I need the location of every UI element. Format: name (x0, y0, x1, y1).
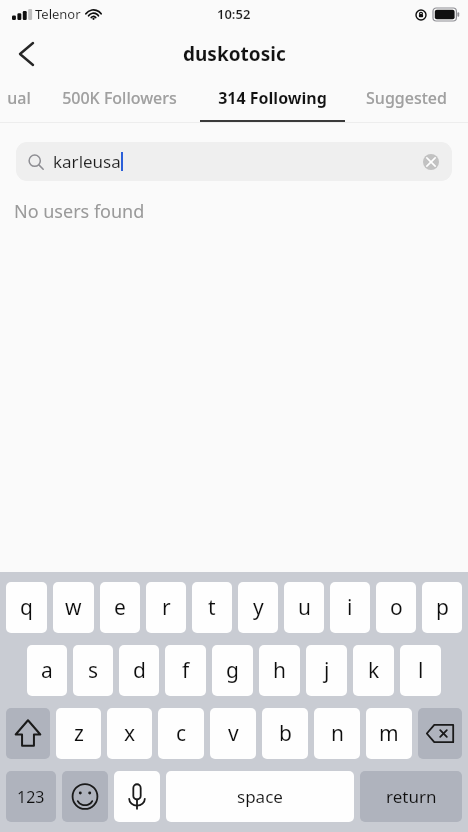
staticText: x (124, 719, 136, 748)
staticText: n (331, 719, 344, 748)
staticText: j (324, 656, 330, 685)
button[interactable]: d (119, 645, 159, 696)
staticText: s (88, 656, 99, 685)
button[interactable]: p (422, 582, 462, 633)
staticText: r (162, 593, 171, 622)
button[interactable]: Shift (6, 708, 50, 759)
staticText: p (436, 593, 449, 622)
button[interactable]: 314 Following (200, 80, 345, 122)
staticText: o (390, 593, 403, 622)
staticText: 500K Followers (62, 87, 177, 109)
staticText: q (20, 593, 33, 622)
button[interactable]: b (262, 708, 308, 759)
staticText: 10:52 (217, 5, 251, 23)
button[interactable]: space (166, 771, 354, 822)
button[interactable]: Voice input (114, 771, 160, 822)
button[interactable]: c (158, 708, 204, 759)
staticText: m (379, 719, 399, 748)
staticText: 314 Following (218, 87, 327, 109)
staticText: l (418, 656, 424, 685)
staticText: i (347, 593, 353, 622)
button[interactable]: y (238, 582, 278, 633)
button[interactable]: z (56, 708, 101, 759)
staticText: c (176, 719, 187, 748)
button[interactable]: return (360, 771, 462, 822)
button[interactable]: o (376, 582, 416, 633)
button[interactable]: a (27, 645, 67, 696)
staticText: w (65, 593, 82, 622)
button[interactable]: Back (0, 28, 52, 80)
button[interactable]: j (306, 645, 347, 696)
button[interactable]: q (6, 582, 47, 633)
button[interactable]: e (100, 582, 140, 633)
staticText: return (386, 785, 437, 808)
button[interactable]: 500K Followers (38, 80, 200, 122)
button[interactable]: s (73, 645, 113, 696)
staticText: a (41, 656, 53, 685)
staticText: karleusa (53, 150, 121, 173)
button[interactable]: t (192, 582, 232, 633)
staticText: z (74, 719, 84, 748)
button[interactable]: l (400, 645, 441, 696)
button[interactable]: f (165, 645, 206, 696)
button[interactable]: ual (0, 80, 38, 122)
button[interactable]: k (353, 645, 394, 696)
button[interactable]: x (107, 708, 152, 759)
staticText: g (226, 656, 239, 685)
staticText: v (228, 719, 239, 748)
button[interactable]: Suggested (345, 80, 468, 122)
staticText: duskotosic (183, 41, 286, 67)
button[interactable]: karleusa (16, 142, 452, 181)
button[interactable]: n (314, 708, 360, 759)
staticText: 123 (17, 786, 45, 808)
button[interactable]: g (212, 645, 253, 696)
staticText: f (182, 656, 190, 685)
button[interactable]: Emoji (62, 771, 108, 822)
staticText: y (253, 593, 264, 622)
button[interactable]: u (284, 582, 324, 633)
staticText: b (279, 719, 292, 748)
button[interactable]: i (330, 582, 370, 633)
button[interactable]: 123 (6, 771, 56, 822)
staticText: t (208, 593, 216, 622)
button[interactable]: Clear text (420, 151, 442, 173)
button[interactable]: w (53, 582, 94, 633)
button[interactable]: m (366, 708, 412, 759)
button[interactable]: h (259, 645, 300, 696)
staticText: h (273, 656, 286, 685)
button[interactable]: v (210, 708, 256, 759)
staticText: k (368, 656, 380, 685)
button[interactable]: r (146, 582, 186, 633)
staticText: Telenor (35, 5, 81, 23)
staticText: u (298, 593, 311, 622)
button[interactable]: Backspace (418, 708, 462, 759)
staticText: No users found (14, 199, 145, 224)
staticText: Suggested (366, 87, 447, 109)
staticText: e (114, 593, 126, 622)
staticText: d (133, 656, 146, 685)
staticText: ual (7, 87, 31, 109)
staticText: space (237, 785, 283, 808)
